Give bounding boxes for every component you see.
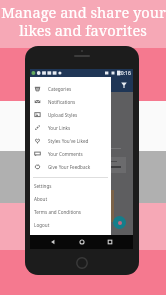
staticText: Your Links	[48, 125, 71, 131]
button[interactable]: Home	[76, 236, 88, 248]
staticText: 20:16	[118, 70, 131, 77]
staticText: Terms and Conditions	[34, 209, 82, 215]
button[interactable]: Back	[47, 236, 59, 248]
button[interactable]: Filter	[119, 80, 129, 90]
button[interactable]: Terms and Conditions	[30, 205, 111, 218]
staticText: Your Comments	[48, 151, 83, 157]
button[interactable]: Upload Styles	[30, 108, 111, 121]
button[interactable]: Add	[113, 216, 126, 229]
staticText: About	[34, 196, 48, 202]
button[interactable]: Notifications	[30, 95, 111, 108]
button[interactable]: Recent apps	[104, 236, 116, 248]
button[interactable]: Logout	[30, 218, 111, 231]
staticText: Upload Styles	[48, 112, 78, 118]
staticText: Notifications	[48, 99, 76, 105]
button[interactable]: Your Links	[30, 121, 111, 134]
staticText: likes and favorites	[19, 20, 147, 40]
button[interactable]: Give Your Feedback	[30, 160, 111, 173]
staticText: Give Your Feedback	[48, 164, 91, 170]
staticText: Styles You've Liked	[48, 138, 89, 144]
button[interactable]: Settings	[30, 179, 111, 192]
staticText: Categories	[48, 86, 72, 92]
staticText: Manage and share your	[1, 2, 166, 22]
button[interactable]: Categories	[30, 82, 111, 95]
button[interactable]: Styles You've Liked	[30, 134, 111, 147]
button[interactable]: About	[30, 192, 111, 205]
button[interactable]: Your Comments	[30, 147, 111, 160]
staticText: Logout	[34, 222, 50, 228]
staticText: Settings	[34, 183, 52, 189]
